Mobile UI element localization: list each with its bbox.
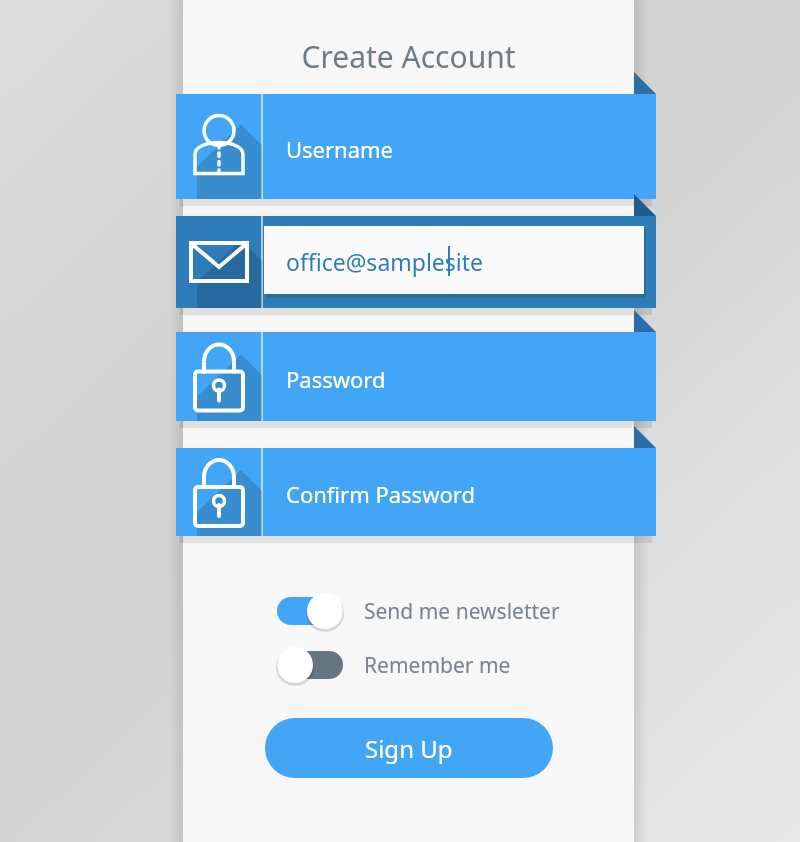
button[interactable]: Email field xyxy=(176,216,656,308)
staticText: Send me newsletter xyxy=(364,597,560,626)
staticText: Confirm Password xyxy=(286,479,475,509)
button[interactable]: Username field xyxy=(176,94,656,199)
button[interactable]: Confirm password field xyxy=(176,448,656,536)
button[interactable]: Sign Up xyxy=(265,718,553,778)
staticText: Password xyxy=(286,364,386,394)
staticText: Remember me xyxy=(364,651,511,680)
button[interactable]: Remember me xyxy=(277,643,547,687)
staticText: Sign Up xyxy=(365,732,453,765)
staticText: Create Account xyxy=(183,36,634,80)
button[interactable]: Password field xyxy=(176,332,656,421)
staticText: Username xyxy=(286,134,394,164)
staticText: office@samplesite xyxy=(286,246,484,277)
button[interactable]: Send me newsletter xyxy=(277,589,547,633)
